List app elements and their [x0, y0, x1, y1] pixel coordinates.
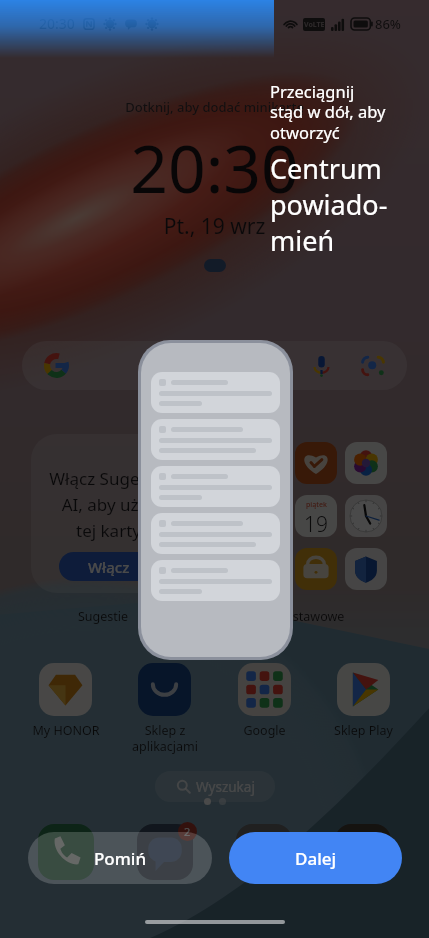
staticText: Pt., 19 wrz [0, 212, 429, 241]
staticText: 86% [375, 15, 401, 33]
other: Google Lens [360, 353, 386, 379]
button[interactable]: My HONOR [16, 663, 115, 739]
staticText: 2 [184, 824, 191, 839]
button[interactable] [295, 442, 337, 484]
other: Voice search [309, 353, 334, 378]
button[interactable]: Aparat [236, 824, 292, 880]
button[interactable]: Galeria [335, 824, 391, 880]
staticText: Sklep Play [334, 722, 393, 739]
staticText: Włącz [88, 557, 130, 577]
staticText: Sklep z aplikacjami [132, 722, 198, 754]
button[interactable]: Google [22, 341, 407, 390]
button[interactable]: Telefon [38, 824, 94, 880]
button[interactable] [345, 548, 387, 590]
staticText: Dalej [295, 847, 337, 870]
staticText: Sugestie [78, 608, 129, 625]
staticText: Pomiń [94, 847, 147, 870]
button[interactable]: Włącz Sugestie AI, aby użyć tej karty [31, 434, 186, 593]
button[interactable]: Google [215, 663, 314, 739]
staticText: 20:30 [0, 122, 429, 212]
button[interactable]: Sklep z aplikacjami [115, 663, 214, 754]
staticText: 20:30 [39, 14, 75, 33]
staticText: Dotknij, aby dodać minikartę [0, 98, 429, 116]
button[interactable]: Wyszukaj [155, 771, 275, 802]
button[interactable]: piątek [295, 495, 337, 537]
staticText: piątek [306, 500, 327, 510]
button[interactable]: Włącz [59, 552, 159, 581]
staticText: Przeciągnij stąd w dół, aby otworzyć [270, 80, 386, 144]
staticText: Centrum powiado- mień [270, 150, 388, 259]
button[interactable] [345, 442, 387, 484]
button[interactable]: Dalej [229, 832, 402, 884]
staticText: Google [243, 722, 286, 739]
staticText: Włącz Sugestie AI, aby użyć tej karty [49, 467, 168, 542]
button[interactable]: Wiadomości [137, 824, 193, 880]
staticText: My HONOR [32, 722, 100, 739]
button[interactable] [345, 495, 387, 537]
button[interactable]: Sklep Play [314, 663, 413, 739]
staticText: VoLTE [304, 20, 325, 30]
button[interactable]: Pomiń [28, 832, 212, 884]
other: Google [44, 353, 69, 378]
button[interactable] [295, 548, 337, 590]
staticText: 19 [304, 510, 328, 537]
staticText: Wyszukaj [196, 778, 255, 796]
staticText: Podstawowe [270, 608, 345, 625]
